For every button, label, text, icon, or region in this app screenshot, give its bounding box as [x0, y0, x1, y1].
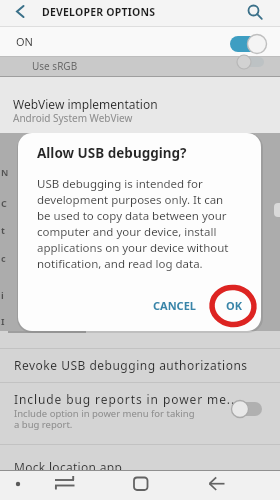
- button[interactable]: OK: [214, 291, 254, 319]
- staticText: CANCEL: [153, 298, 196, 313]
- staticText: Use sRGB: [32, 59, 78, 73]
- staticText: USB debugging is intended for: [37, 176, 203, 192]
- button[interactable]: CANCEL: [142, 291, 206, 319]
- button[interactable]: Include bug reports in power me..: [0, 383, 280, 443]
- button[interactable]: Revoke USB debugging authorizations: [0, 349, 280, 382]
- staticText: OK: [226, 298, 243, 313]
- staticText: be used to copy data between your: [37, 208, 227, 224]
- button[interactable]: Mock location app: [0, 445, 280, 470]
- staticText: Android System WebView: [13, 111, 133, 125]
- staticText: t: [1, 224, 5, 236]
- button[interactable]: Use sRGB: [0, 57, 280, 76]
- staticText: Allow USB debugging?: [37, 144, 187, 162]
- staticText: DEVELOPER OPTIONS: [42, 5, 156, 19]
- staticText: Revoke USB debugging authorizations: [14, 357, 248, 373]
- button[interactable]: [4, 0, 32, 26]
- button[interactable]: WebView implementation: [0, 77, 280, 133]
- staticText: Include bug reports in power me..: [14, 391, 236, 407]
- button[interactable]: [124, 471, 158, 500]
- staticText: development purposes only. It can: [37, 192, 224, 208]
- staticText: computer and your device, install: [37, 224, 217, 240]
- staticText: i: [1, 289, 4, 301]
- staticText: applications on your device without: [37, 240, 229, 256]
- staticText: c: [1, 252, 6, 264]
- staticText: a bug report.: [14, 418, 73, 431]
- button[interactable]: [242, 0, 270, 26]
- staticText: WebView implementation: [13, 96, 158, 112]
- button[interactable]: [48, 471, 82, 500]
- staticText: I: [1, 315, 5, 327]
- staticText: Include option in power menu for taking: [14, 407, 195, 420]
- staticText: ON: [16, 34, 33, 49]
- button[interactable]: [200, 471, 234, 500]
- staticText: Mock location app: [14, 459, 123, 475]
- staticText: notification, and read log data.: [37, 256, 203, 272]
- staticText: C: [1, 197, 7, 209]
- button[interactable]: ON: [0, 27, 280, 56]
- staticText: N: [1, 166, 9, 178]
